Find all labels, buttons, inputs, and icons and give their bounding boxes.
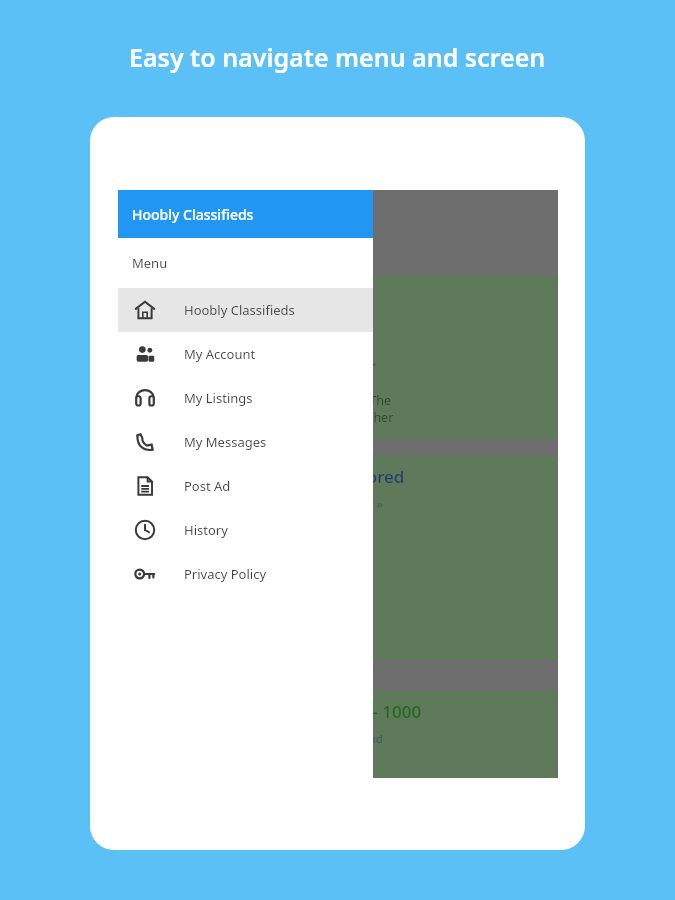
button[interactable]: Hoobly Classifieds [118,190,373,238]
staticText: We have some beautiful, double coated [132,538,364,555]
staticText: Oakland, CA (United States) » tyree » Do… [132,731,383,747]
button[interactable]: History [118,508,373,552]
staticText: Menu [132,254,168,272]
button[interactable]: My Account [118,332,373,376]
staticText: puppies are great around children and ot… [132,409,394,426]
staticText: Lebanon, PA (United States) » schwartzfa… [132,496,383,512]
staticText: Hoobly Classifieds [132,205,254,224]
staticText: Easy to navigate menu and screen [129,40,546,74]
staticText: between 50 and 60 lbs when full-grown. T… [132,392,391,409]
button[interactable]: Hoobly Classifieds [118,288,373,332]
staticText: Privacy Policy [184,565,267,583]
button[interactable]: Post Ad [118,464,373,508]
button[interactable]: Goldendoodle puppies [118,275,558,440]
staticText: Hoobly Classifieds [184,301,295,319]
staticText: Goldendoodle puppies [132,285,316,308]
staticText: History [184,521,228,539]
staticText: My Account [184,345,256,363]
staticText: My Listings [184,389,253,407]
button[interactable]: Privacy Policy [118,552,373,596]
staticText: homes. Mom and dad should weigh [132,375,343,392]
button[interactable]: Cavapoo Labradores puppies [118,690,558,778]
staticText: - 450 [316,285,360,308]
staticText: Dogs and Puppies » Pomanian [132,512,297,528]
button[interactable]: My Listings [118,376,373,420]
staticText: Post Ad [184,477,231,495]
button[interactable]: My Messages [118,420,373,464]
staticText: Pomeranian Babies! Parti Colored [132,465,405,488]
staticText: My Messages [184,433,267,451]
staticText: Pomeranian babies are waiting for their [132,555,366,572]
staticText: Kokomo, IN (United States) » puppyplace [132,316,353,332]
button[interactable]: Pomeranian Babies! Parti Colored [118,455,558,660]
staticText: We have 4 puppies ready for their foreve… [132,358,376,375]
staticText: new homes. We have 1 girl and 2 boys [132,572,356,589]
staticText: - 1000 [368,700,422,723]
staticText: Dogs and Puppies » Goldendoodle [132,332,319,348]
